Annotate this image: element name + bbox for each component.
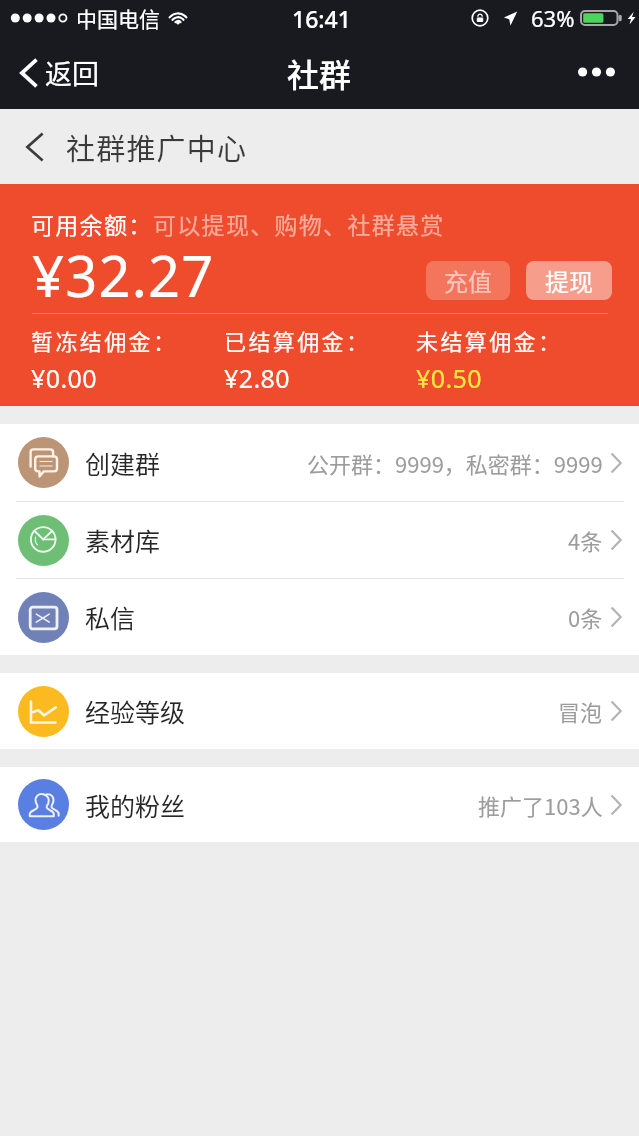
staticText: 可以提现、购物、社群悬赏 (153, 207, 445, 240)
staticText: ¥0.00 (31, 361, 97, 395)
staticText: 0条 (568, 601, 603, 633)
staticText: 可用余额： (31, 207, 153, 240)
staticText: 未结算佣金： (416, 324, 563, 356)
staticText: 社群 (287, 50, 352, 96)
button[interactable]: 提现 (526, 261, 612, 300)
staticText: 暂冻结佣金： (31, 324, 178, 356)
staticText: ¥2.80 (224, 361, 290, 395)
staticText: 充值 (444, 263, 492, 298)
staticText: 4条 (568, 524, 603, 556)
staticText: 63% (531, 3, 575, 33)
staticText: 返回 (45, 53, 99, 92)
staticText: 冒泡 (558, 695, 603, 727)
staticText: 我的粉丝 (85, 787, 186, 823)
staticText: 社群推广中心 (66, 126, 248, 168)
staticText: 私信 (85, 599, 136, 635)
staticText: 推广了103人 (478, 789, 603, 821)
staticText: ¥32.27 (32, 237, 215, 313)
button[interactable]: 我的粉丝 (0, 767, 639, 842)
button[interactable]: 充值 (426, 261, 510, 300)
button[interactable]: More options (566, 57, 639, 87)
staticText: 16:41 (292, 3, 351, 34)
staticText: 公开群：9999，私密群：9999 (307, 447, 603, 479)
staticText: 中国电信 (76, 3, 160, 33)
button[interactable]: 经验等级 (0, 673, 639, 749)
staticText: 已结算佣金： (224, 324, 371, 356)
staticText: 素材库 (85, 522, 161, 558)
button[interactable]: 返回 (0, 53, 113, 92)
staticText: 经验等级 (85, 693, 186, 729)
button[interactable]: 私信 (0, 579, 639, 655)
staticText: ¥0.50 (416, 361, 482, 395)
button[interactable]: 社群推广中心 (0, 126, 268, 168)
button[interactable]: 素材库 (0, 502, 639, 578)
staticText: 提现 (545, 263, 593, 298)
staticText: 创建群 (85, 445, 161, 481)
button[interactable]: 创建群 (0, 424, 639, 501)
